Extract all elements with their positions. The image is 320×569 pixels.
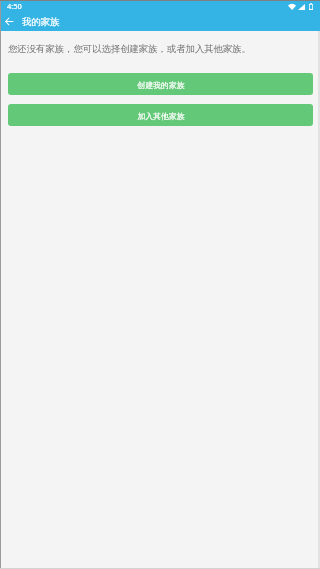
staticText: 加入其他家族 [137, 111, 185, 121]
button[interactable]: Back [1, 13, 18, 31]
staticText: 我的家族 [22, 16, 60, 28]
staticText: 您还没有家族，您可以选择创建家族，或者加入其他家族。 [8, 43, 251, 55]
staticText: 创建我的家族 [137, 80, 185, 90]
staticText: 4:50 [7, 1, 22, 11]
button[interactable]: 加入其他家族 [8, 104, 313, 126]
button[interactable]: 创建我的家族 [8, 73, 313, 95]
